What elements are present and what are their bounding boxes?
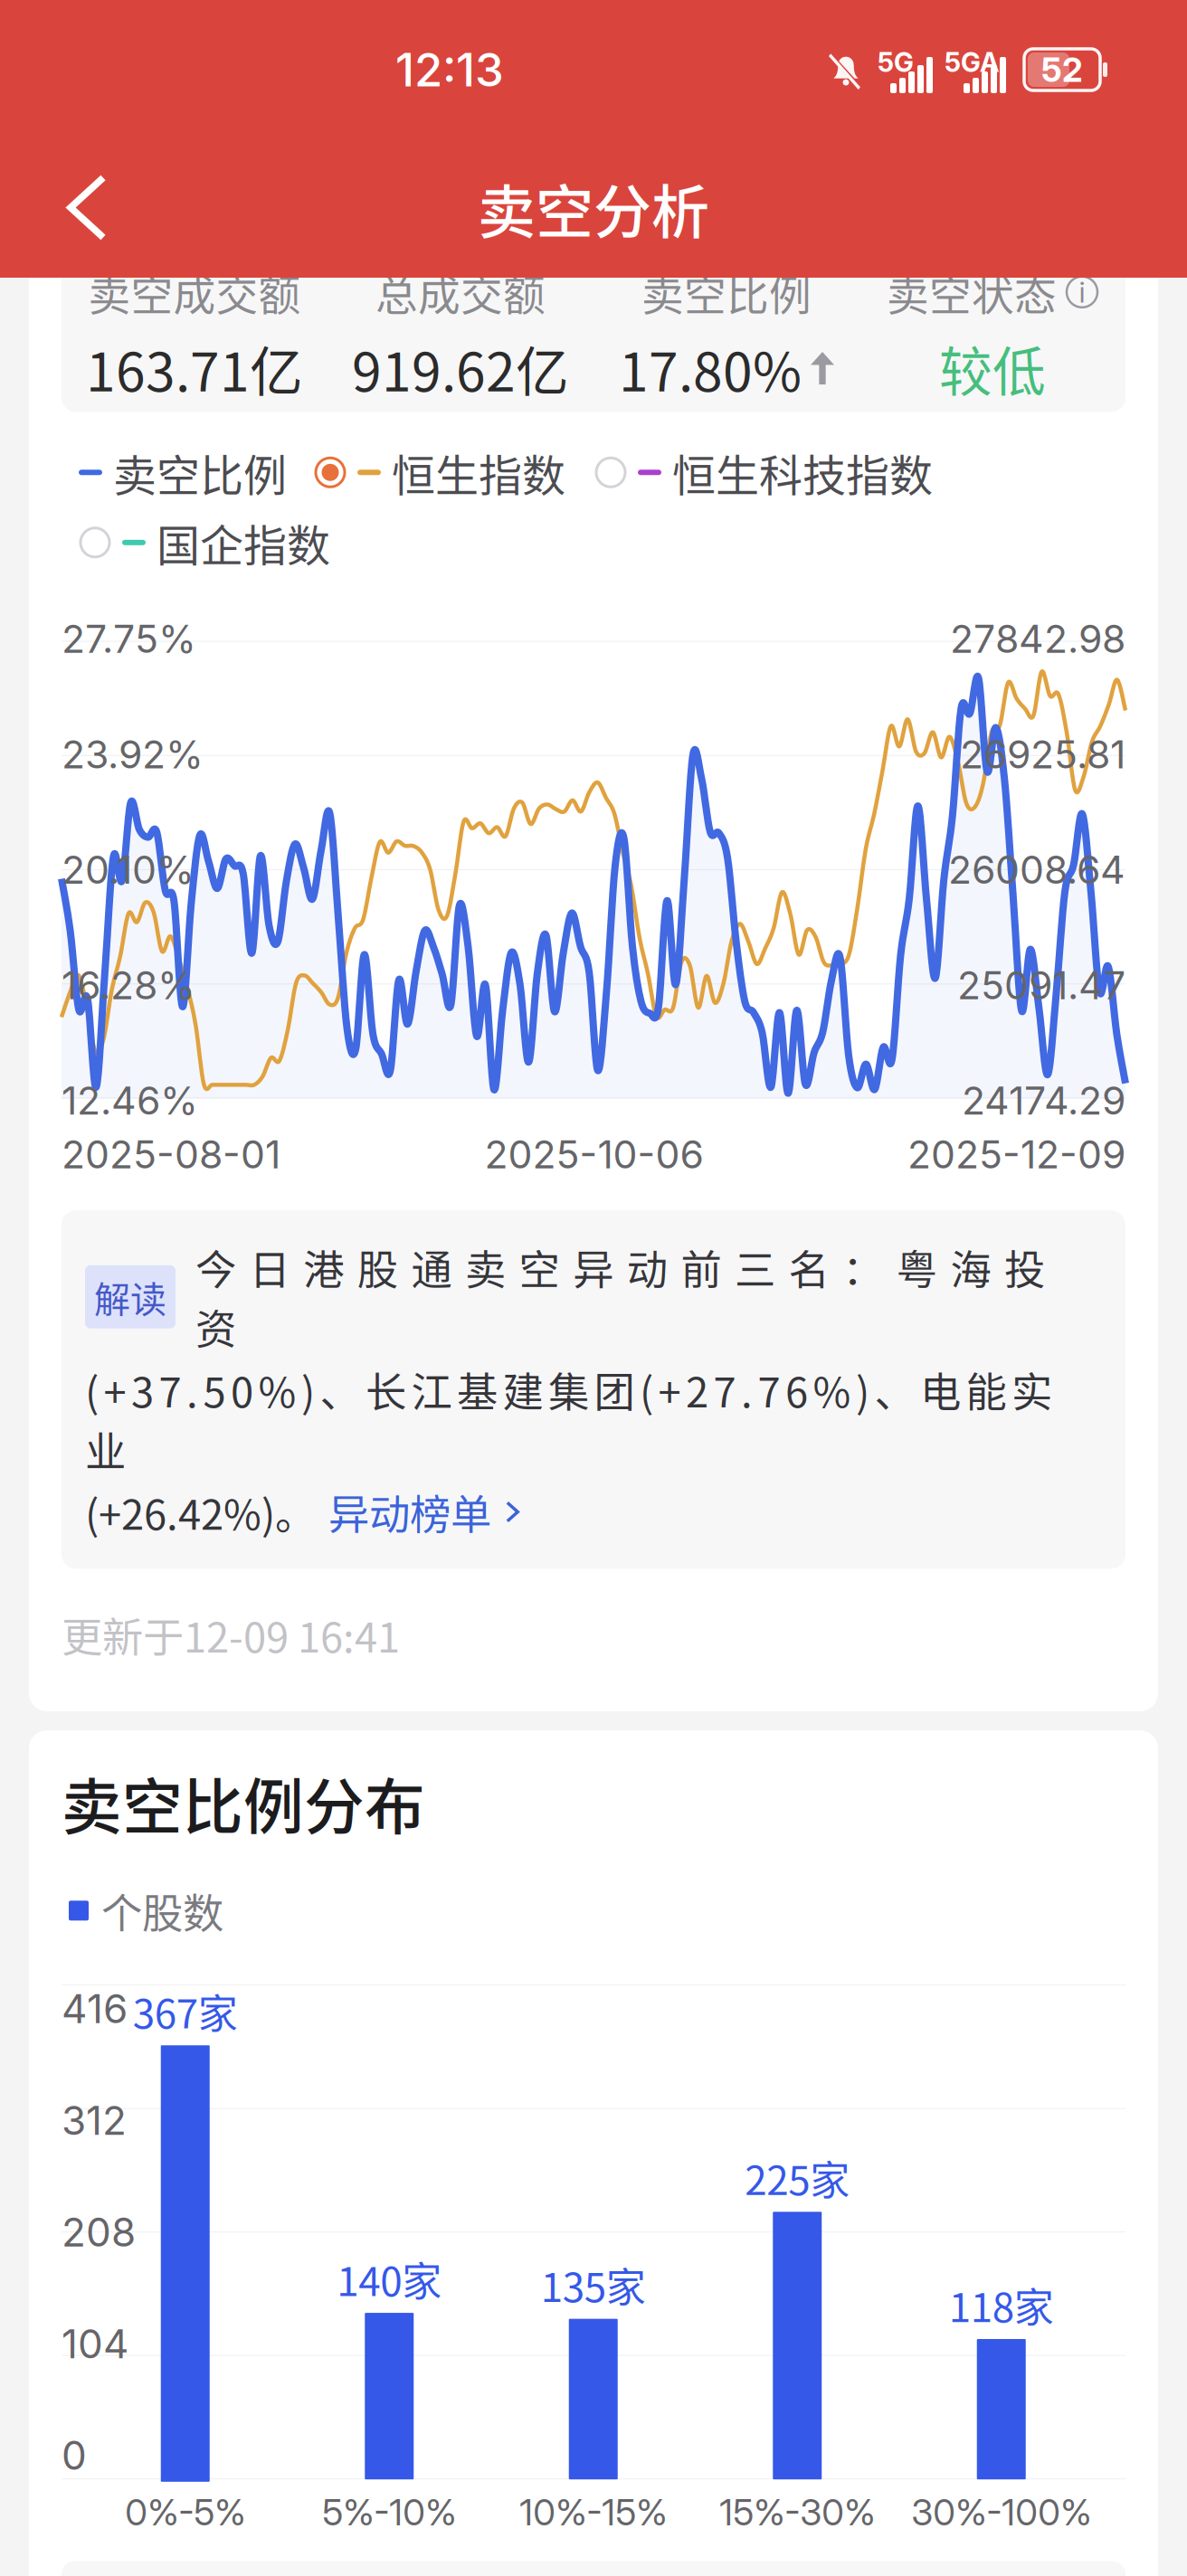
staticText: 总成交额 <box>375 261 546 323</box>
staticText: 卖空比例分布 <box>62 1759 425 1847</box>
staticText: 5G <box>878 46 914 78</box>
staticText: 个股数 <box>101 1881 223 1940</box>
staticText: 312 <box>62 2096 127 2144</box>
staticText: 225家 <box>745 2149 850 2206</box>
staticText: 卖空比例 <box>641 261 812 323</box>
staticText: 恒生指数 <box>392 441 565 504</box>
staticText: 118家 <box>949 2276 1054 2334</box>
staticText: 367家 <box>133 1982 238 2040</box>
staticText: 104 <box>62 2320 128 2368</box>
staticText: 异动榜单 <box>328 1482 491 1542</box>
staticText: 国企指数 <box>157 511 330 574</box>
staticText: 26925.81 <box>960 731 1125 778</box>
staticText: 919.62亿 <box>352 330 569 407</box>
staticText: 12:13 <box>395 42 504 97</box>
staticText: 更新于12-09 16:41 <box>62 1605 400 1664</box>
staticText: 5%-10% <box>322 2490 456 2534</box>
staticText: i <box>1079 274 1085 309</box>
staticText: 0 <box>62 2431 87 2479</box>
staticText: 解读 <box>94 1271 166 1323</box>
staticText: 20.10% <box>62 846 195 893</box>
staticText: 52 <box>1041 49 1083 90</box>
staticText: 卖空比例 <box>113 441 287 504</box>
staticText: 135家 <box>541 2256 646 2313</box>
staticText: 26008.64 <box>948 846 1125 893</box>
staticText: 2025-10-06 <box>484 1131 703 1178</box>
staticText: 2025-08-01 <box>62 1131 280 1178</box>
staticText: 25091.47 <box>957 962 1125 1008</box>
button[interactable]: 国企指数 <box>79 511 330 574</box>
button[interactable]: 异动榜单 <box>328 1482 524 1542</box>
staticText: 208 <box>62 2208 136 2256</box>
staticText: 0%-5% <box>125 2490 245 2534</box>
staticText: 16.28% <box>62 962 195 1008</box>
staticText: 30%-100% <box>911 2490 1091 2534</box>
staticText: 卖空分析 <box>478 166 709 250</box>
staticText: (+37.50%)、长江基建集团(+27.76%)、电能实业 <box>85 1360 1052 1479</box>
staticText: 140家 <box>337 2250 442 2307</box>
button[interactable]: 卖空比例 <box>79 441 287 504</box>
staticText: 24174.29 <box>962 1077 1125 1124</box>
button[interactable]: 恒生科技指数 <box>594 441 933 504</box>
staticText: 今日港股通卖空异动前三名：粤海投资 <box>195 1238 1045 1356</box>
staticText: 27.75% <box>62 616 196 662</box>
staticText: 卖空成交额 <box>88 261 301 323</box>
staticText: 恒生科技指数 <box>672 441 933 504</box>
staticText: 10%-15% <box>519 2490 667 2534</box>
button[interactable]: Back <box>0 154 143 261</box>
staticText: 416 <box>62 1985 128 2033</box>
button[interactable]: 恒生指数 <box>314 441 565 504</box>
staticText: 23.92% <box>62 731 204 778</box>
staticText: 163.71亿 <box>86 330 303 407</box>
staticText: (+26.42%)。 <box>85 1482 316 1542</box>
staticText: 2025-12-09 <box>907 1131 1125 1178</box>
staticText: 较低 <box>939 330 1046 407</box>
staticText: 17.80% <box>619 330 802 407</box>
staticText: 27842.98 <box>950 616 1125 662</box>
staticText: 15%-30% <box>719 2490 875 2534</box>
staticText: 12.46% <box>62 1077 198 1124</box>
staticText: 卖空状态 <box>887 261 1057 323</box>
staticText: 5GA <box>945 46 999 78</box>
